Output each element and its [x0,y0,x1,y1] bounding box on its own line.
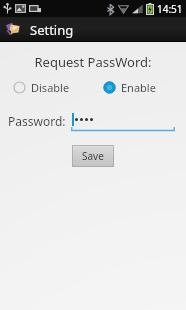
button[interactable]: Save [72,145,114,167]
staticText: Enable [121,80,156,95]
button[interactable]: App icon [3,20,75,40]
other: App icon [4,20,24,40]
button[interactable]: Enable [101,78,158,97]
staticText: Save [82,149,104,163]
staticText: Setting [30,21,74,39]
staticText: Password: [8,113,66,129]
staticText: Request PassWord: [0,53,186,71]
button[interactable] [71,110,175,132]
staticText: 14:51 [157,2,183,16]
staticText: Disable [31,80,70,95]
button[interactable]: Disable [11,78,72,97]
